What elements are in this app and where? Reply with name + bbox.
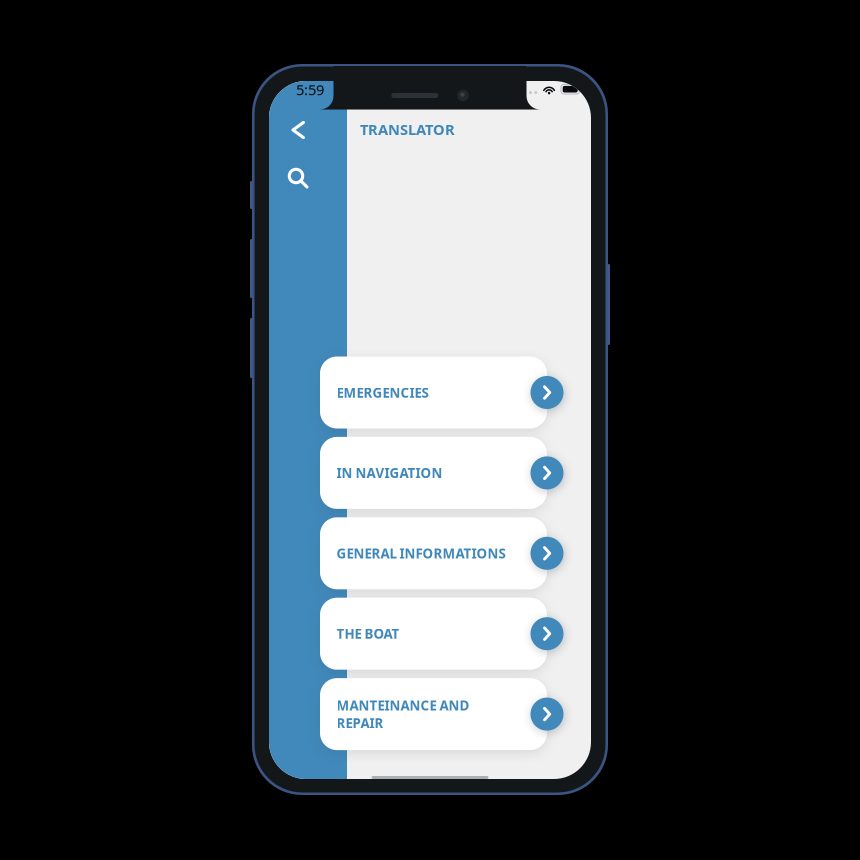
staticText: THE BOAT — [336, 625, 399, 642]
staticText: 5:59 — [296, 80, 324, 99]
staticText: EMERGENCIES — [336, 384, 428, 401]
button[interactable]: Back — [278, 113, 318, 147]
button[interactable]: THE BOAT — [320, 598, 547, 670]
staticText: TRANSLATOR — [360, 119, 455, 139]
button[interactable]: EMERGENCIES — [320, 356, 547, 428]
button[interactable]: Search — [278, 161, 318, 195]
staticText: MANTEINANCE AND REPAIR — [336, 696, 469, 732]
button[interactable]: MANTEINANCE AND REPAIR — [320, 678, 547, 750]
staticText: IN NAVIGATION — [336, 464, 442, 482]
button[interactable]: GENERAL INFORMATIONS — [320, 517, 547, 589]
button[interactable]: IN NAVIGATION — [320, 437, 547, 509]
staticText: GENERAL INFORMATIONS — [336, 544, 505, 562]
